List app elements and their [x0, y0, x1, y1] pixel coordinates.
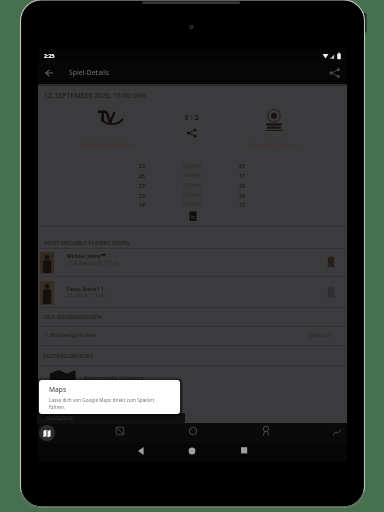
button[interactable] — [188, 426, 198, 436]
button[interactable]: Wickler, Jenny — [38, 249, 347, 277]
staticText: (24 min) — [174, 201, 210, 207]
staticText: Rote Raben Vilsbiburg — [59, 141, 155, 148]
staticText: 2:25 — [44, 52, 55, 59]
staticText: 17 — [239, 172, 256, 179]
staticText: 1. Bundesliga Frauen — [45, 331, 97, 338]
staticText: Allianz MTV Stuttgart — [226, 141, 321, 148]
staticText: (25 min) — [174, 163, 210, 169]
staticText: Ballsporthalle Vilsbiburg — [84, 374, 144, 381]
staticText: MOST VALUABLE PLAYERS (MVPS) — [44, 239, 130, 246]
staticText: (27 min) — [174, 192, 210, 198]
button[interactable] — [188, 211, 198, 222]
button[interactable] — [328, 66, 342, 80]
staticText: 25 — [239, 182, 256, 189]
staticText: 17 — [239, 201, 256, 208]
button[interactable]: Cesar, Annie — [38, 278, 347, 308]
staticText: Maps — [49, 385, 67, 394]
button[interactable] — [186, 127, 198, 139]
staticText: GASTGEBER — [46, 415, 73, 422]
staticText: 23 — [128, 162, 145, 169]
staticText: 27 — [128, 182, 145, 189]
staticText: 23 — [128, 192, 145, 199]
button[interactable] — [185, 444, 199, 458]
button[interactable] — [42, 66, 56, 80]
staticText: Wickler, Jenny — [67, 253, 101, 260]
staticText: 25 — [239, 162, 256, 169]
button[interactable]: Maps — [39, 380, 180, 414]
staticText: Lasse dich von Google Maps direkt zum Sp… — [49, 397, 155, 403]
button[interactable]: Ballsporthalle Vilsbiburg — [38, 365, 347, 403]
staticText: AUSTRAGUNGSORT — [43, 352, 93, 359]
button[interactable] — [115, 426, 125, 436]
staticText: 25 — [239, 192, 256, 199]
staticText: 12. SEPTEMBER 2020, 15:00 UHR — [44, 91, 147, 100]
staticText: LIGA INFORMATIONEN — [43, 313, 102, 320]
staticText: Spiele: 6011 — [268, 332, 334, 338]
button[interactable] — [332, 427, 342, 437]
button[interactable] — [261, 425, 271, 437]
staticText: 25 — [128, 172, 145, 179]
staticText: 27, Außenangriff, 173 cm — [67, 260, 119, 266]
staticText: 19 — [128, 201, 145, 208]
staticText: 23, Libero, 173 cm — [67, 292, 105, 298]
button[interactable] — [39, 425, 55, 441]
staticText: Cesar, Annie — [67, 286, 97, 293]
staticText: 3 : 2 — [171, 112, 212, 122]
button[interactable] — [237, 444, 251, 458]
staticText: (26 min) — [174, 172, 210, 178]
button[interactable] — [134, 444, 148, 458]
staticText: Spiel-Details — [69, 68, 110, 77]
staticText: (33 min) — [174, 182, 210, 188]
staticText: führen. — [49, 404, 66, 410]
